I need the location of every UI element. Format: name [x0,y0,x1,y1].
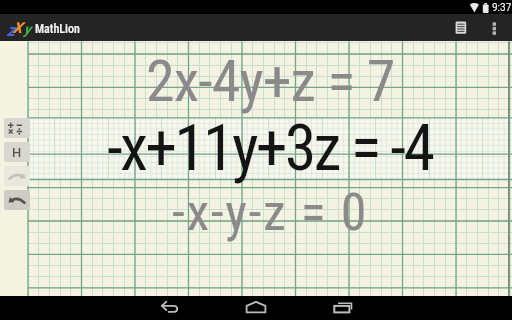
staticText: X [13,19,23,37]
button[interactable] [243,296,269,320]
button[interactable] [331,296,357,320]
staticText: -x+11y+3z = -4 [107,111,433,186]
button[interactable] [486,17,502,39]
button[interactable]: z [6,14,36,41]
button[interactable]: 2x-4y+z = 7 [28,36,512,126]
staticText: MathLion [35,22,80,36]
staticText: z [7,20,16,40]
staticText: 9:37 [492,2,512,14]
staticText: 2x-4y+z = 7 [146,47,395,115]
button[interactable] [4,190,30,210]
staticText: -x-y-z = 0 [172,182,369,243]
button[interactable] [4,118,30,138]
button[interactable] [4,166,30,186]
button[interactable]: H [4,142,30,162]
button[interactable]: -x-y-z = 0 [28,167,512,257]
button[interactable] [157,296,183,320]
button[interactable] [451,17,471,39]
staticText: H [12,145,22,160]
staticText: y [24,21,31,37]
button[interactable]: -x+11y+3z = -4 [28,103,512,193]
